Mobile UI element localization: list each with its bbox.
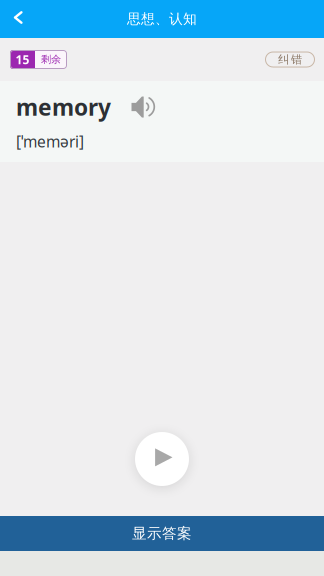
staticText: 剩余 [41,53,61,66]
staticText: [ˈmeməri] [16,131,84,152]
staticText: 错 [291,52,302,66]
button[interactable]: 纠 [265,51,315,67]
staticText: 思想、认知 [127,10,197,28]
staticText: 15 [15,51,29,67]
button[interactable]: Back [0,0,38,38]
button[interactable]: Pronounce word [131,95,158,119]
staticText: memory [16,92,111,122]
staticText: 纠 [278,52,289,66]
button[interactable]: 显示答案 [0,516,324,551]
staticText: 显示答案 [132,524,192,543]
button[interactable]: Play audio [135,432,189,486]
